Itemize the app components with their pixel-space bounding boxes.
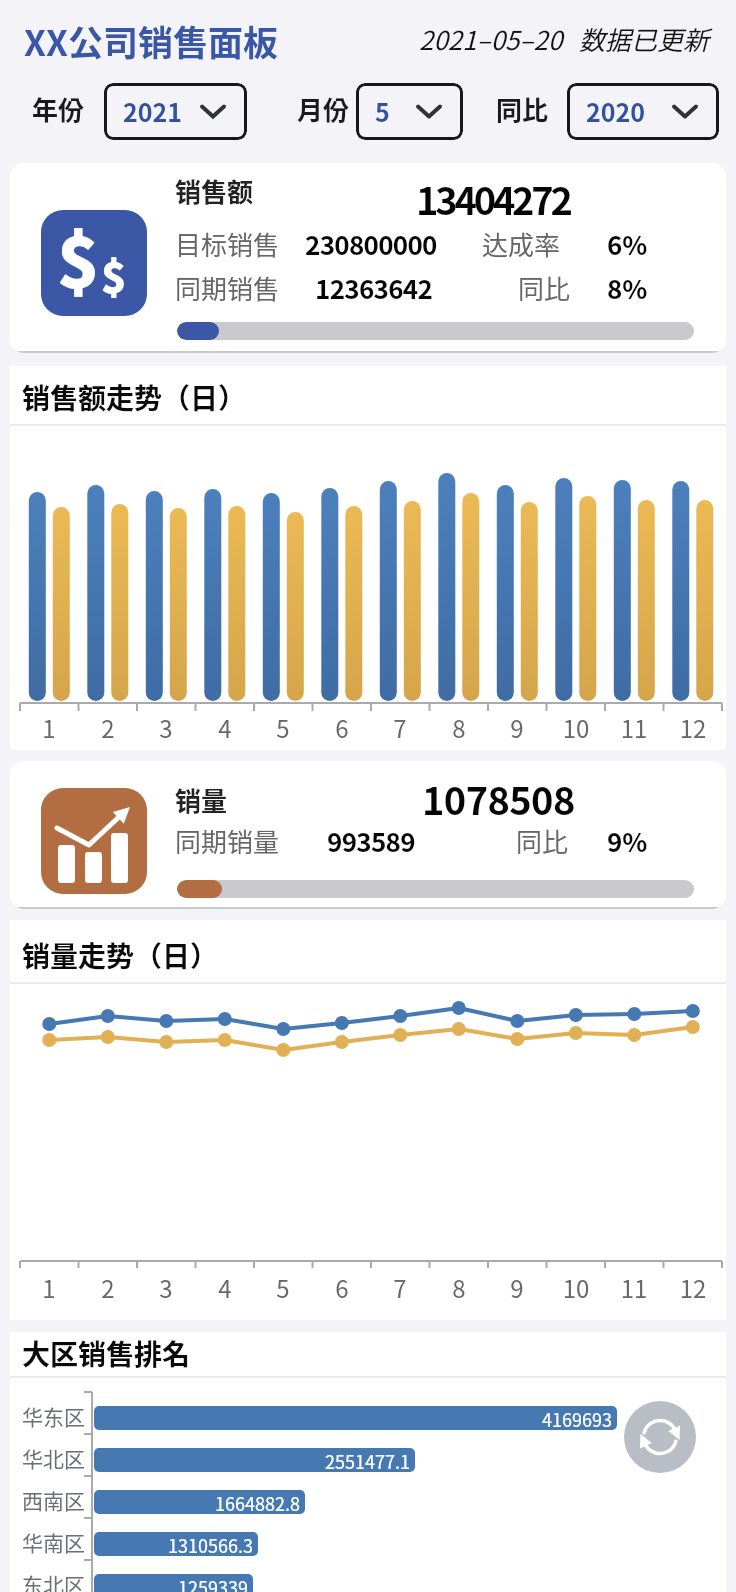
- staticText: 230800000: [305, 225, 437, 263]
- staticText: 8: [429, 1270, 489, 1305]
- staticText: 2021: [123, 93, 183, 129]
- staticText: 5: [253, 710, 313, 745]
- staticText: 销量: [175, 781, 228, 819]
- staticText: 9%: [607, 822, 648, 860]
- staticText: 993589: [327, 822, 415, 860]
- staticText: $: [101, 244, 127, 305]
- staticText: 9: [487, 710, 547, 745]
- staticText: 1: [19, 710, 79, 745]
- staticText: 2551477.1: [325, 1448, 410, 1472]
- staticText: 12: [663, 710, 723, 745]
- staticText: 2: [78, 1270, 138, 1305]
- staticText: 8: [429, 710, 489, 745]
- staticText: 同期销售: [175, 269, 280, 307]
- staticText: 10: [546, 710, 606, 745]
- staticText: 5: [253, 1270, 313, 1305]
- button[interactable]: [624, 1401, 696, 1473]
- staticText: 年份: [32, 90, 85, 128]
- staticText: 数据已更新: [579, 20, 710, 58]
- staticText: XX公司销售面板: [24, 15, 278, 66]
- staticText: 大区销售排名: [22, 1333, 191, 1374]
- staticText: 华北区: [22, 1443, 85, 1473]
- staticText: 月份: [297, 90, 350, 128]
- staticText: 销售额: [175, 172, 254, 210]
- staticText: 同比: [496, 90, 549, 128]
- staticText: 11: [604, 710, 664, 745]
- staticText: 11: [604, 1270, 664, 1305]
- staticText: 7: [370, 710, 430, 745]
- staticText: 9: [487, 1270, 547, 1305]
- staticText: 1078508: [422, 771, 575, 826]
- staticText: 1310566.3: [168, 1532, 253, 1556]
- staticText: 5: [375, 93, 390, 129]
- staticText: 销量走势（日）: [22, 935, 219, 976]
- staticText: 华东区: [22, 1401, 85, 1431]
- staticText: 4: [195, 1270, 255, 1305]
- staticText: 3: [136, 710, 196, 745]
- staticText: 东北区: [22, 1569, 85, 1592]
- staticText: 销售额走势（日）: [22, 377, 247, 418]
- staticText: $: [57, 210, 100, 308]
- staticText: 7: [370, 1270, 430, 1305]
- staticText: 1: [19, 1270, 79, 1305]
- staticText: 目标销售: [175, 225, 280, 263]
- button[interactable]: 2020: [567, 83, 719, 140]
- staticText: 4: [195, 710, 255, 745]
- staticText: 达成率: [482, 225, 561, 263]
- staticText: 2021–05–20: [419, 20, 563, 58]
- staticText: 同期销量: [175, 822, 280, 860]
- staticText: 1664882.8: [215, 1490, 300, 1514]
- staticText: 10: [546, 1270, 606, 1305]
- button[interactable]: 2021: [104, 83, 247, 140]
- staticText: 6%: [607, 225, 648, 263]
- staticText: 2020: [586, 93, 646, 129]
- staticText: 华南区: [22, 1527, 85, 1557]
- staticText: 同比: [518, 269, 571, 307]
- staticText: 6: [312, 1270, 372, 1305]
- staticText: 4169693: [542, 1406, 612, 1430]
- staticText: 13404272: [416, 171, 570, 226]
- staticText: 同比: [516, 822, 569, 860]
- staticText: 12: [663, 1270, 723, 1305]
- staticText: 西南区: [22, 1485, 85, 1515]
- staticText: 1259339: [178, 1574, 248, 1592]
- staticText: 2: [78, 710, 138, 745]
- staticText: 3: [136, 1270, 196, 1305]
- button[interactable]: 5: [356, 83, 463, 140]
- staticText: 8%: [607, 269, 648, 307]
- staticText: 12363642: [315, 269, 433, 307]
- staticText: 6: [312, 710, 372, 745]
